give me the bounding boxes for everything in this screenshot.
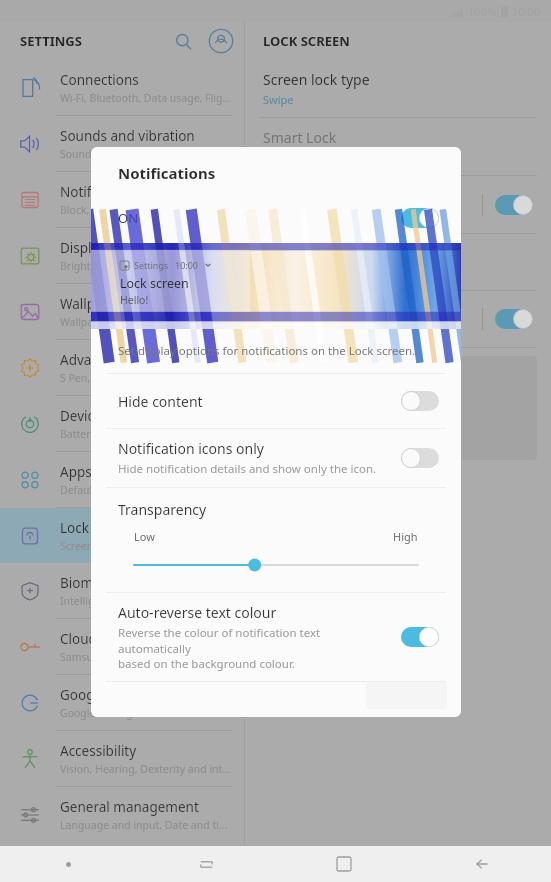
button[interactable]: Wallpapers and themes <box>0 284 244 340</box>
staticText: Wallpapers and themes <box>60 295 210 313</box>
staticText: Vision, Hearing, Dexterity and intera... <box>60 762 234 776</box>
staticText: Accessibility <box>60 742 137 760</box>
button[interactable]: Screen lock type <box>245 60 551 118</box>
button[interactable]: Auto-reverse text colour <box>91 593 461 681</box>
button[interactable]: Toggle on <box>401 627 439 647</box>
button[interactable]: Account <box>204 24 238 58</box>
staticText: Notifications <box>60 183 141 201</box>
button[interactable]: Toggle off <box>401 448 439 468</box>
staticText: High <box>393 529 418 544</box>
button[interactable]: Cloud and accounts <box>0 619 244 675</box>
button[interactable]: Recents <box>137 846 275 882</box>
staticText: Wi-Fi, Bluetooth, Data usage, Flight... <box>60 91 234 105</box>
staticText: General management <box>60 798 199 816</box>
staticText: SETTINGS <box>20 32 82 50</box>
staticText: ... Lock screen. <box>263 255 339 270</box>
button[interactable]: Connections <box>0 60 244 116</box>
staticText: Samsung Cloud, Backup and restore <box>60 650 234 664</box>
staticText: Transparency <box>118 500 207 519</box>
staticText: r or email <box>263 312 313 327</box>
staticText: IRIS SCANNER <box>273 416 354 432</box>
staticText: Set display options for notifications on… <box>118 343 416 359</box>
button[interactable]: Hide content <box>91 374 461 428</box>
button[interactable]: Apps <box>0 452 244 508</box>
staticText: Brightness, Blue light filter, Home s... <box>60 259 234 273</box>
button[interactable]: Notifications <box>245 176 551 234</box>
button[interactable]: Toggle on <box>495 309 533 329</box>
staticText: Settings <box>134 259 169 271</box>
button[interactable]: ... Lock screen. <box>245 234 551 291</box>
button[interactable]: Search <box>166 24 200 58</box>
button[interactable]: IRIS SCANNER <box>259 356 537 460</box>
staticText: Lock screen <box>120 275 189 292</box>
button[interactable]: Transparency slider <box>134 554 418 576</box>
button[interactable]: Biometrics and security <box>0 563 244 619</box>
button[interactable]: Smart Lock <box>245 118 551 176</box>
staticText: Wallpapers, Themes, Icons <box>60 315 192 329</box>
staticText: Reverse the colour of notification text … <box>118 625 391 671</box>
button[interactable]: r or email <box>245 291 551 348</box>
button[interactable]: Notifications <box>0 172 244 228</box>
staticText: Screen lock type, Fingerprints <box>60 539 206 553</box>
staticText: Cloud and accounts <box>60 630 185 648</box>
staticText: Intelligent scan, Face recognition <box>60 594 223 608</box>
button[interactable]: Lock screen and security <box>0 508 244 563</box>
button[interactable]: Sounds and vibration <box>0 116 244 172</box>
staticText: Low <box>134 529 155 544</box>
staticText: Biometrics and security <box>60 574 209 592</box>
staticText: Sounds, Vibration, Do not disturb <box>60 147 224 161</box>
staticText: Hide notification details and show only … <box>118 461 377 477</box>
staticText: Swipe <box>263 92 294 107</box>
staticText: Language and input, Date and time,... <box>60 818 234 832</box>
button[interactable]: Google <box>0 675 244 731</box>
staticText: Screen lock type <box>263 70 370 89</box>
button[interactable]: Home <box>275 846 413 882</box>
button[interactable]: Advanced features <box>0 340 244 396</box>
staticText: Set display options ... ck screen. <box>263 208 426 223</box>
staticText: Battery, Storage, Memory <box>60 427 187 441</box>
staticText: Auto-reverse text colour <box>118 603 277 622</box>
staticText: Smart Lock <box>263 128 337 147</box>
staticText: Google settings <box>60 706 138 720</box>
button[interactable]: Display <box>0 228 244 284</box>
staticText: 10:00 <box>175 259 199 271</box>
staticText: Device maintenance <box>60 407 189 425</box>
button[interactable]: Back <box>413 846 551 882</box>
button[interactable]: Toggle off <box>401 391 439 411</box>
staticText: Connections <box>60 71 139 89</box>
staticText: Advanced features <box>60 351 179 369</box>
staticText: Lock screen and security <box>60 519 216 537</box>
staticText: Google <box>60 686 106 704</box>
button[interactable]: Device maintenance <box>0 396 244 452</box>
button[interactable]: Toggle on <box>401 208 439 228</box>
button[interactable]: Accessibility <box>0 731 244 787</box>
staticText: Display <box>60 239 107 257</box>
button[interactable]: ON <box>118 199 439 237</box>
button[interactable]: Notification icons only <box>91 429 461 487</box>
button[interactable]: General management <box>0 787 244 842</box>
staticText: Hide content <box>118 392 203 411</box>
button[interactable]: Toggle on <box>495 195 533 215</box>
staticText: Block, allow, prioritise <box>60 203 168 217</box>
staticText: Apps <box>60 463 92 481</box>
staticText: Notifications <box>118 163 216 183</box>
staticText: Default apps, App permissions <box>60 483 211 497</box>
staticText: LOCK SCREEN <box>263 32 350 50</box>
staticText: Hello! <box>120 293 149 307</box>
staticText: S Pen, Smart stay, Game Launcher <box>60 371 229 385</box>
staticText: Sounds and vibration <box>60 127 195 145</box>
staticText: Notification icons only <box>118 439 264 458</box>
staticText: ON <box>118 209 139 227</box>
